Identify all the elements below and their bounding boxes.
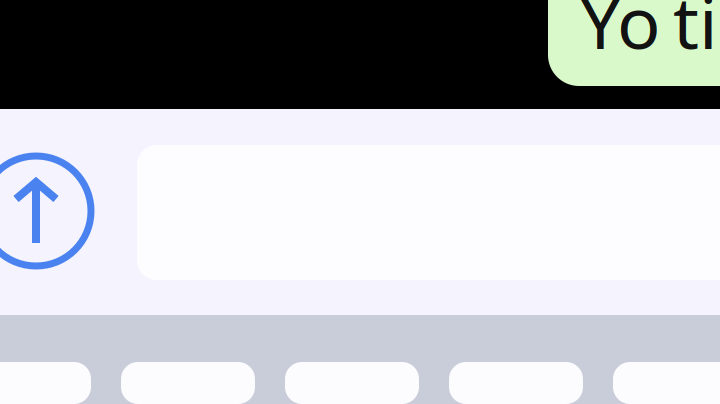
- button[interactable]: Send: [0, 151, 96, 271]
- button[interactable]: E: [121, 362, 255, 404]
- button[interactable]: R: [285, 362, 419, 404]
- button[interactable]: Y: [613, 362, 720, 404]
- staticText: Yo time: [580, 0, 720, 69]
- button[interactable]: T: [449, 362, 583, 404]
- button[interactable]: W: [0, 362, 91, 404]
